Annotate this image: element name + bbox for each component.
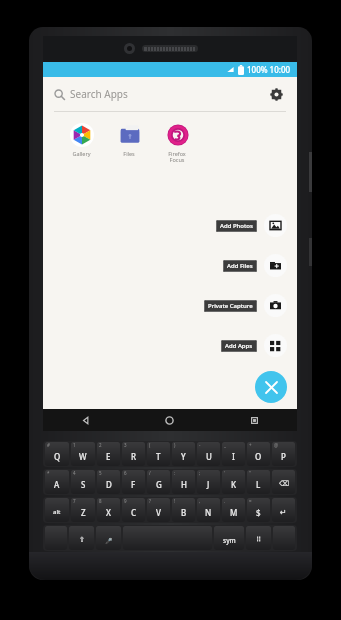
staticText: , (199, 498, 201, 504)
button[interactable]: Search Apps (43, 77, 297, 111)
staticText: 🎤 (105, 537, 113, 544)
staticText: S (81, 479, 86, 490)
staticText: L (256, 479, 261, 490)
button[interactable]: Gallery (57, 122, 105, 157)
button[interactable]: " (247, 470, 270, 494)
staticText: P (281, 451, 286, 462)
button[interactable]: : (172, 470, 195, 494)
staticText: + (249, 442, 252, 448)
staticText: O (255, 451, 262, 462)
button[interactable]: ' (222, 470, 245, 494)
staticText: 7 (73, 498, 76, 504)
staticText: _ (224, 442, 226, 448)
staticText: ) (174, 442, 176, 448)
staticText: Search Apps (70, 87, 128, 101)
button[interactable]: Files (105, 122, 153, 157)
button[interactable]: 9 (122, 498, 145, 522)
staticText: E (106, 451, 111, 462)
button[interactable]: 8 (97, 498, 120, 522)
button[interactable]: 6 (122, 470, 145, 494)
button[interactable]: / (147, 470, 170, 494)
staticText: D (106, 479, 112, 490)
staticText: ; (199, 470, 201, 476)
staticText: Firefox Focus (168, 150, 186, 164)
staticText: R (131, 451, 137, 462)
staticText: ' (224, 470, 226, 476)
button[interactable]: 7 (71, 498, 95, 522)
staticText: ⇧ (79, 536, 85, 544)
staticText: ↵ (280, 508, 287, 517)
button[interactable]: Recent apps (212, 409, 297, 431)
button[interactable]: 3 (122, 442, 145, 466)
button[interactable]: # (45, 442, 69, 466)
staticText: Add Apps (225, 342, 253, 350)
button[interactable]: @ (272, 442, 295, 466)
staticText: H (181, 479, 187, 490)
button[interactable] (45, 526, 67, 550)
button[interactable]: _ (222, 442, 245, 466)
staticText: Private Capture (208, 302, 253, 310)
button[interactable]: ! (172, 498, 195, 522)
button[interactable]: Back (43, 409, 127, 431)
staticText: sym (223, 536, 236, 545)
button[interactable]: ⠿ (246, 526, 271, 550)
staticText: U (206, 451, 212, 462)
button[interactable]: ) (172, 442, 195, 466)
button[interactable]: sym (214, 526, 244, 550)
button[interactable]: Add Apps (221, 331, 287, 360)
staticText: W (79, 451, 87, 462)
staticText: Gallery (72, 150, 91, 157)
staticText: Add Photos (220, 222, 253, 230)
button[interactable]: alt (45, 498, 69, 522)
staticText: " (249, 470, 251, 476)
button[interactable] (273, 526, 295, 550)
staticText: X (106, 507, 111, 518)
staticText: / (149, 470, 151, 476)
button[interactable]: Add Files (223, 251, 287, 280)
staticText: 3 (124, 442, 127, 448)
button[interactable]: 1 (71, 442, 95, 466)
staticText: ¤ (249, 498, 252, 504)
button[interactable]: Settings (266, 84, 286, 104)
staticText: : (174, 470, 176, 476)
staticText: $ (256, 507, 261, 518)
button[interactable]: . (222, 498, 245, 522)
button[interactable]: Add Photos (216, 211, 287, 240)
button[interactable]: 4 (71, 470, 95, 494)
button[interactable]: ¤ (247, 498, 270, 522)
button[interactable]: ( (147, 442, 170, 466)
staticText: # (47, 442, 50, 448)
button[interactable]: Private Capture (204, 291, 287, 320)
staticText: 8 (99, 498, 102, 504)
button[interactable]: ⌫ (272, 470, 295, 494)
button[interactable]: - (197, 442, 220, 466)
staticText: alt (53, 508, 61, 516)
button[interactable]: Home (127, 409, 212, 431)
staticText: - (199, 442, 201, 448)
button[interactable]: 🎤 (96, 526, 121, 550)
staticText: ⌫ (279, 480, 289, 488)
staticText: 4 (73, 470, 76, 476)
staticText: G (156, 479, 162, 490)
button[interactable]: 5 (97, 470, 120, 494)
button[interactable]: ↵ (272, 498, 295, 522)
staticText: Files (123, 150, 135, 157)
staticText: @ (274, 442, 279, 448)
button[interactable]: * (45, 470, 69, 494)
button[interactable]: ? (147, 498, 170, 522)
staticText: N (205, 507, 212, 518)
staticText: ( (149, 442, 151, 448)
button[interactable]: ⇧ (69, 526, 94, 550)
button[interactable]: Firefox Focus (153, 122, 201, 164)
button[interactable]: ; (197, 470, 220, 494)
staticText: V (156, 507, 161, 518)
staticText: Y (181, 451, 186, 462)
staticText: 1 (73, 442, 76, 448)
button[interactable] (123, 526, 212, 550)
staticText: B (181, 507, 187, 518)
button[interactable]: Close menu (255, 371, 287, 403)
staticText: 100% 10:00 (247, 64, 291, 75)
button[interactable]: 2 (97, 442, 120, 466)
button[interactable]: + (247, 442, 270, 466)
button[interactable]: , (197, 498, 220, 522)
